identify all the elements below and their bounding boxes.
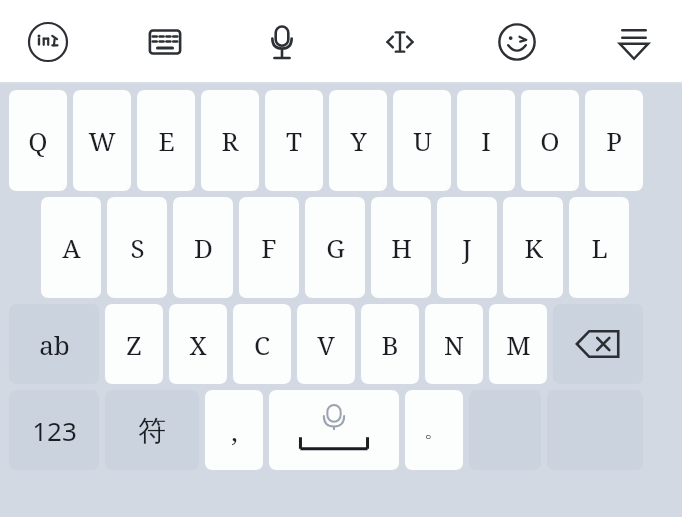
staticText: E <box>158 123 175 158</box>
button[interactable]: Keyboard layout <box>139 16 191 68</box>
button[interactable]: Space <box>269 390 399 470</box>
button[interactable]: V <box>297 304 355 384</box>
staticText: J <box>462 230 472 265</box>
button[interactable]: X <box>169 304 227 384</box>
staticText: V <box>317 327 335 362</box>
button[interactable]: ab <box>9 304 99 384</box>
button[interactable]: J <box>437 197 497 298</box>
button[interactable]: Q <box>9 90 67 191</box>
staticText: O <box>540 123 560 158</box>
staticText: Z <box>126 327 142 362</box>
staticText: H <box>391 230 412 265</box>
button[interactable]: R <box>201 90 259 191</box>
staticText: U <box>413 123 432 158</box>
staticText: A <box>62 230 81 265</box>
button[interactable]: S <box>107 197 167 298</box>
staticText: M <box>506 327 531 362</box>
staticText: Y <box>350 123 367 158</box>
button[interactable]: Input method <box>22 16 74 68</box>
staticText: D <box>194 230 213 265</box>
button[interactable]: I <box>457 90 515 191</box>
button[interactable]: Backspace <box>553 304 643 384</box>
button[interactable]: 符 <box>105 390 199 470</box>
staticText: Q <box>28 123 48 158</box>
staticText: 123 <box>32 413 77 448</box>
button[interactable]: A <box>41 197 101 298</box>
staticText: B <box>381 327 399 362</box>
button[interactable]: U <box>393 90 451 191</box>
button[interactable]: 。 <box>405 390 463 470</box>
button[interactable]: L <box>569 197 629 298</box>
button[interactable]: E <box>137 90 195 191</box>
button[interactable]: P <box>585 90 643 191</box>
staticText: , <box>231 413 238 448</box>
button[interactable]: Z <box>105 304 163 384</box>
button[interactable]: Voice input <box>256 16 308 68</box>
button[interactable]: N <box>425 304 483 384</box>
button[interactable]: 123 <box>9 390 99 470</box>
staticText: ab <box>39 327 70 362</box>
button[interactable]: B <box>361 304 419 384</box>
button[interactable]: W <box>73 90 131 191</box>
button[interactable]: Hide keyboard <box>608 16 660 68</box>
staticText: T <box>286 123 302 158</box>
staticText: R <box>221 123 239 158</box>
staticText: C <box>254 327 270 362</box>
button[interactable]: F <box>239 197 299 298</box>
button[interactable]: Emoji <box>491 16 543 68</box>
button[interactable]: M <box>489 304 547 384</box>
button[interactable]: Edit cursor <box>374 16 426 68</box>
button[interactable]: K <box>503 197 563 298</box>
button[interactable]: G <box>305 197 365 298</box>
staticText: K <box>524 230 543 265</box>
staticText: N <box>444 327 464 362</box>
button[interactable]: D <box>173 197 233 298</box>
staticText: P <box>606 123 622 158</box>
staticText: L <box>591 230 608 265</box>
staticText: W <box>88 123 116 158</box>
staticText: G <box>326 230 345 265</box>
button[interactable]: , <box>205 390 263 470</box>
button[interactable]: O <box>521 90 579 191</box>
button[interactable]: C <box>233 304 291 384</box>
staticText: 。 <box>424 418 444 443</box>
staticText: I <box>481 123 491 158</box>
staticText: S <box>130 230 145 265</box>
staticText: F <box>261 230 277 265</box>
button[interactable]: Y <box>329 90 387 191</box>
button[interactable]: H <box>371 197 431 298</box>
staticText: 符 <box>138 413 166 448</box>
button[interactable]: T <box>265 90 323 191</box>
staticText: X <box>189 327 207 362</box>
